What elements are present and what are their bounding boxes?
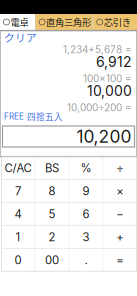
staticText: + (116, 230, 123, 244)
button[interactable]: FREE (4, 112, 74, 121)
button[interactable]: 9 (69, 180, 102, 202)
staticText: 直角三角形 (46, 15, 91, 29)
button[interactable]: 5 (35, 203, 69, 225)
button[interactable]: 3 (69, 226, 102, 248)
staticText: BS (45, 161, 59, 175)
button[interactable]: 7 (1, 180, 35, 202)
button[interactable]: 芯引き (93, 14, 137, 30)
staticText: 6,912 (96, 53, 132, 70)
staticText: = (116, 253, 123, 267)
staticText: 10,000÷200 = (67, 101, 132, 114)
button[interactable]: = (103, 249, 136, 271)
button[interactable]: % (69, 157, 102, 179)
staticText: 9 (82, 184, 89, 198)
staticText: 6 (82, 207, 89, 221)
staticText: 00 (45, 253, 59, 267)
staticText: クリア (4, 29, 37, 45)
button[interactable]: 電卓 (0, 14, 35, 30)
staticText: 0 (15, 253, 22, 267)
button[interactable]: 00 (35, 249, 69, 271)
staticText: ÷ (116, 161, 123, 175)
button[interactable]: 4 (1, 203, 35, 225)
staticText: 10,000 (87, 82, 132, 99)
staticText: 7 (15, 184, 21, 198)
staticText: . (84, 253, 87, 267)
button[interactable]: − (103, 203, 136, 225)
button[interactable]: × (103, 180, 136, 202)
button[interactable]: 1 (1, 226, 35, 248)
button[interactable]: クリア (4, 32, 44, 42)
staticText: FREE (4, 111, 24, 121)
staticText: C/AC (5, 161, 32, 175)
staticText: 1,234+5,678 = (63, 43, 132, 56)
staticText: 5 (48, 207, 55, 221)
button[interactable]: 6 (69, 203, 102, 225)
button[interactable]: C/AC (1, 157, 35, 179)
staticText: 四捨五入 (27, 110, 63, 123)
staticText: 1 (16, 230, 21, 244)
staticText: 10,200 (76, 126, 131, 147)
staticText: 3 (82, 230, 89, 244)
button[interactable]: 直角三角形 (36, 14, 93, 30)
staticText: 8 (48, 184, 55, 198)
button[interactable]: 8 (35, 180, 69, 202)
button[interactable]: 0 (1, 249, 35, 271)
button[interactable]: BS (35, 157, 69, 179)
staticText: 4 (15, 207, 22, 221)
staticText: 100×100 = (83, 72, 132, 85)
staticText: 芯引き (104, 15, 131, 29)
button[interactable]: ÷ (103, 157, 136, 179)
staticText: − (116, 207, 123, 221)
staticText: × (116, 184, 123, 198)
staticText: 電卓 (10, 15, 28, 29)
staticText: 2 (48, 230, 55, 244)
staticText: % (80, 161, 91, 175)
button[interactable]: + (103, 226, 136, 248)
button[interactable]: . (69, 249, 102, 271)
button[interactable]: 2 (35, 226, 69, 248)
